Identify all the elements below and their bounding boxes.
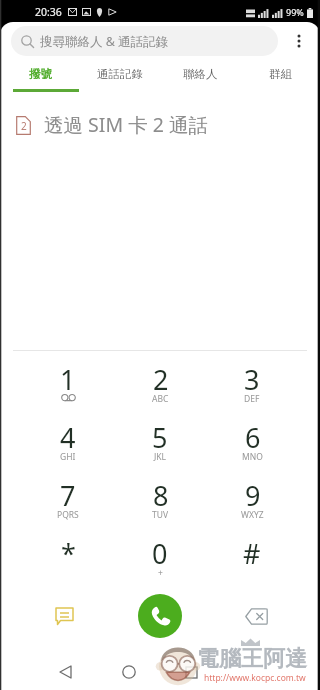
staticText: 8 bbox=[153, 477, 169, 514]
button[interactable]: 5 bbox=[114, 421, 206, 479]
staticText: TUV bbox=[152, 509, 169, 521]
staticText: 0 bbox=[152, 535, 168, 572]
button[interactable]: Home bbox=[109, 652, 149, 690]
button[interactable]: Recents bbox=[171, 652, 211, 690]
button[interactable]: 8 bbox=[114, 479, 206, 537]
button[interactable]: 7 bbox=[22, 479, 114, 537]
staticText: DEF bbox=[244, 393, 260, 405]
button[interactable]: Message bbox=[44, 596, 84, 636]
staticText: PQRS bbox=[57, 509, 79, 521]
staticText: 2 bbox=[21, 119, 27, 133]
staticText: 1 bbox=[60, 361, 76, 398]
staticText: 99% bbox=[286, 6, 304, 18]
staticText: 5 bbox=[152, 419, 168, 456]
button[interactable]: 搜尋聯絡人 & 通話記錄 bbox=[11, 26, 278, 56]
button[interactable]: More options bbox=[278, 22, 320, 60]
staticText: 聯絡人 bbox=[183, 67, 218, 81]
staticText: ABC bbox=[152, 393, 169, 405]
button[interactable]: 群組 bbox=[240, 60, 320, 91]
button[interactable]: 4 bbox=[22, 421, 114, 479]
staticText: + bbox=[158, 567, 163, 579]
staticText: 撥號 bbox=[29, 67, 52, 81]
staticText: 4 bbox=[60, 419, 76, 456]
button[interactable]: 聯絡人 bbox=[160, 60, 240, 91]
staticText: 9 bbox=[245, 477, 261, 514]
staticText: 2 bbox=[153, 361, 169, 398]
staticText: 透過 SIM 卡 2 通話 bbox=[44, 111, 208, 138]
button[interactable]: 撥號 bbox=[0, 60, 80, 91]
staticText: JKL bbox=[154, 451, 167, 463]
button[interactable]: 9 bbox=[206, 479, 298, 537]
staticText: 群組 bbox=[269, 67, 292, 81]
button[interactable]: 6 bbox=[206, 421, 298, 479]
staticText: 電腦王阿達 bbox=[197, 645, 307, 673]
staticText: 3 bbox=[244, 361, 260, 398]
staticText: 7 bbox=[60, 477, 76, 514]
staticText: 搜尋聯絡人 & 通話記錄 bbox=[40, 33, 169, 50]
staticText: WXYZ bbox=[241, 509, 264, 521]
button[interactable]: 1 bbox=[22, 363, 114, 421]
staticText: * bbox=[61, 535, 76, 572]
staticText: 20:36 bbox=[35, 5, 62, 19]
button[interactable]: * bbox=[22, 537, 114, 595]
button[interactable]: Backspace bbox=[236, 596, 276, 636]
button[interactable]: Call bbox=[138, 594, 182, 638]
button[interactable]: 通話記錄 bbox=[80, 60, 160, 91]
button[interactable]: 2 bbox=[114, 363, 206, 421]
button[interactable]: 3 bbox=[206, 363, 298, 421]
staticText: 通話記錄 bbox=[97, 67, 143, 81]
staticText: MNO bbox=[242, 451, 263, 463]
button[interactable]: Back bbox=[45, 652, 85, 690]
staticText: # bbox=[243, 535, 261, 572]
staticText: 6 bbox=[245, 419, 261, 456]
button[interactable]: # bbox=[206, 537, 298, 595]
staticText: GHI bbox=[60, 451, 76, 463]
button[interactable]: 0 bbox=[114, 537, 206, 595]
staticText: http://www.kocpc.com.tw bbox=[204, 672, 306, 684]
